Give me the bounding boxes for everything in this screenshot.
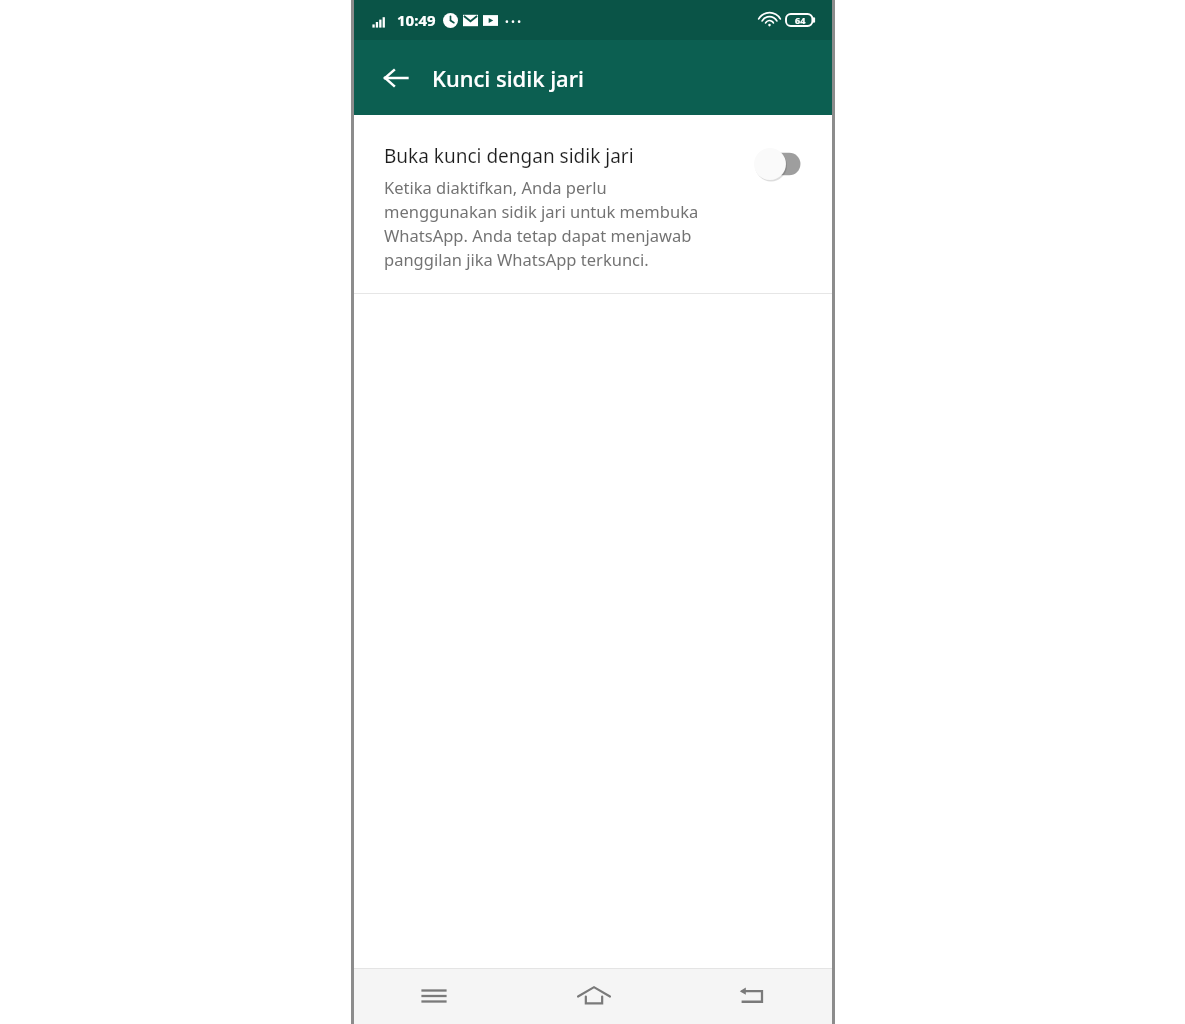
staticText: 64 <box>795 14 806 26</box>
staticText: Buka kunci dengan sidik jari <box>384 143 634 169</box>
button[interactable]: Menu <box>354 968 514 1024</box>
button[interactable]: Buka kunci dengan sidik jari <box>354 115 832 293</box>
button[interactable]: Unlock with fingerprint toggle <box>754 147 808 181</box>
staticText: Ketika diaktifkan, Anda perlu menggunaka… <box>384 176 699 271</box>
button[interactable]: Back <box>673 968 832 1024</box>
staticText: 10:49 <box>397 10 436 30</box>
staticText: Kunci sidik jari <box>432 63 584 93</box>
button[interactable]: Back <box>374 56 418 100</box>
button[interactable]: Home <box>514 968 673 1024</box>
